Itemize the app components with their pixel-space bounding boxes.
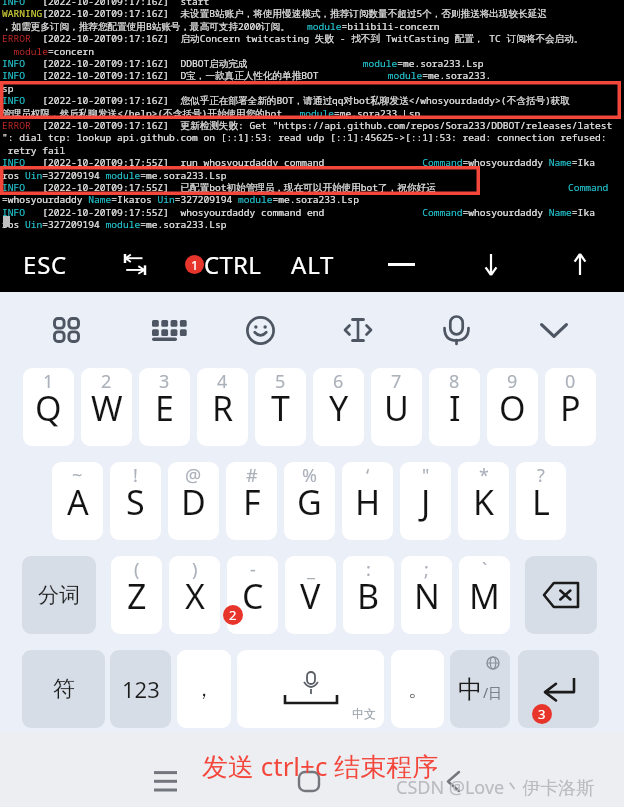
staticText: 9 (507, 369, 518, 394)
staticText: A (67, 479, 89, 525)
button[interactable]: 符 (22, 650, 105, 728)
staticText: Z (127, 573, 147, 619)
button[interactable]: ` (459, 556, 510, 634)
staticText: # (246, 463, 258, 488)
button[interactable]: 5 (255, 368, 306, 446)
staticText: 中 (458, 674, 483, 705)
staticText: ": dial tcp: lookup api.github.com on [:… (2, 131, 624, 144)
button[interactable]: 8 (429, 368, 480, 446)
staticText: ALT (291, 248, 335, 281)
button[interactable]: 3 (139, 368, 190, 446)
staticText: J (421, 479, 431, 525)
staticText: ros Uin=327209194 module=me.sora233.Lsp (2, 218, 624, 231)
staticText: ~ (72, 463, 83, 488)
button[interactable]: Voice input (407, 292, 505, 368)
staticText: 管理员权限，然后私聊发送</help>(不含括号)开始使用您的bot modul… (2, 107, 624, 120)
staticText: B (357, 573, 380, 619)
button[interactable]: Keyboard (115, 292, 212, 368)
button[interactable]: Backspace (525, 556, 597, 634)
button[interactable]: ( (111, 556, 162, 634)
staticText: " (422, 463, 430, 488)
button[interactable]: Back (419, 761, 487, 801)
staticText: E (155, 385, 174, 431)
button[interactable]: 9 (487, 368, 538, 446)
staticText: ros Uin=327209194 module=me.sora233.Lsp (2, 169, 624, 182)
staticText: X (185, 573, 205, 619)
staticText: 分词 (38, 582, 80, 608)
button[interactable]: Home (275, 761, 343, 801)
staticText: ‘ (366, 463, 370, 488)
button[interactable]: 中 (450, 650, 510, 728)
button[interactable]: 6 (313, 368, 364, 446)
staticText: 5 (275, 369, 286, 394)
staticText: V (300, 573, 321, 619)
button[interactable]: Emoji (212, 292, 309, 368)
staticText: ? (537, 463, 545, 488)
staticText: I (449, 385, 461, 431)
staticText: 7 (391, 369, 402, 394)
button[interactable]: 7 (371, 368, 422, 446)
staticText: L (532, 479, 550, 525)
button[interactable]: 4 (197, 368, 248, 446)
button[interactable]: _ (285, 556, 336, 634)
staticText: ESC (23, 248, 68, 281)
staticText: INFO [2022-10-20T09:17:16Z] DDBOT启动完成 mo… (2, 57, 624, 70)
staticText: Q (35, 385, 62, 431)
staticText: K (473, 479, 495, 525)
button[interactable]: Recents (131, 761, 199, 801)
button[interactable]: ? (516, 462, 566, 540)
staticText: N (414, 573, 440, 619)
button[interactable]: Tab (90, 237, 179, 292)
button[interactable]: Minus (357, 237, 446, 292)
button[interactable]: - (227, 556, 278, 634)
staticText: ，如需更多订阅，推荐您配置使用B站账号，最高可支持2000订阅。 module=… (2, 20, 624, 33)
button[interactable]: 分词 (22, 556, 96, 634)
button[interactable]: Space (237, 650, 384, 728)
button[interactable]: Hide keyboard (505, 292, 603, 368)
button[interactable]: Arrow up (535, 237, 624, 292)
button[interactable]: ! (110, 462, 161, 540)
button[interactable]: 0 (545, 368, 596, 446)
button[interactable]: Apps (18, 292, 115, 368)
staticText: INFO [2022-10-20T09:17:16Z] 您似乎正在部署全新的BO… (2, 94, 624, 107)
staticText: 发送 ctrl+c 结束程序 (202, 748, 439, 784)
button[interactable]: @ (168, 462, 219, 540)
button[interactable]: ， (177, 650, 231, 728)
staticText: 8 (449, 369, 460, 394)
button[interactable]: ‘ (342, 462, 393, 540)
staticText: F (243, 479, 261, 525)
button[interactable]: 2 (81, 368, 132, 446)
staticText: ` (482, 557, 488, 582)
staticText: WARNING[2022-10-20T09:17:16Z] 未设置B站账户，将使… (2, 7, 624, 20)
button[interactable]: Enter (518, 650, 599, 728)
staticText: D (181, 479, 206, 525)
staticText: retry fail (2, 144, 624, 157)
staticText: _ (307, 557, 315, 582)
button[interactable]: ALT (268, 237, 357, 292)
staticText: CTRL (204, 248, 262, 281)
button[interactable]: 。 (391, 650, 444, 728)
button[interactable]: Arrow down (446, 237, 535, 292)
button[interactable]: " (400, 462, 451, 540)
button[interactable]: # (226, 462, 277, 540)
button[interactable]: Text cursor (309, 292, 407, 368)
button[interactable]: ESC (0, 237, 90, 292)
staticText: ) (192, 557, 198, 582)
button[interactable]: 123 (110, 650, 171, 728)
button[interactable]: ~ (52, 462, 103, 540)
staticText: INFO [2022-10-20T09:17:55Z] 已配置bot初始管理员，… (2, 181, 624, 194)
button[interactable]: ; (401, 556, 452, 634)
staticText: Y (329, 385, 349, 431)
button[interactable]: : (343, 556, 394, 634)
button[interactable]: ) (169, 556, 220, 634)
staticText: INFO [2022-10-20T09:17:16Z] start (2, 0, 624, 8)
button[interactable]: 1 (179, 237, 268, 292)
button[interactable]: 1 (23, 368, 74, 446)
staticText: ! (133, 463, 138, 488)
staticText: ERROR [2022-10-20T09:17:16Z] 更新检测失败: Get… (2, 119, 624, 132)
button[interactable]: * (458, 462, 509, 540)
button[interactable]: % (284, 462, 335, 540)
staticText: * (479, 463, 489, 488)
staticText: module=concern (2, 45, 624, 58)
staticText: 1 (43, 369, 54, 394)
